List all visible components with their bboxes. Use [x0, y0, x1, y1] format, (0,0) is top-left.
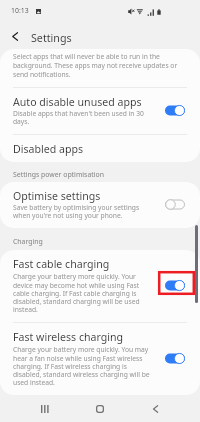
staticText: Save battery by optimising your settings… [13, 203, 150, 220]
button[interactable]: Fast cable charging [0, 250, 200, 322]
staticText: Settings power optimisation [13, 170, 104, 179]
button[interactable]: Back [7, 28, 23, 44]
staticText: Charge your battery more quickly. You ma… [13, 345, 150, 387]
staticText: Disabled apps [13, 142, 84, 156]
staticText: Charging [13, 237, 43, 246]
button[interactable]: Back [143, 396, 168, 421]
staticText: Select apps that will never be able to r… [13, 52, 189, 79]
staticText: Fast wireless charging [13, 330, 124, 344]
button[interactable]: Disabled apps [0, 134, 200, 162]
staticText: Settings [31, 31, 72, 46]
staticText: Auto disable unused apps [13, 95, 142, 109]
button[interactable]: Recent apps [32, 396, 57, 421]
button[interactable]: Home [87, 396, 112, 421]
staticText: Disable apps that haven't been used in 3… [13, 109, 150, 126]
button[interactable]: Optimise settings [0, 182, 200, 228]
staticText: Charge your battery more quickly. Your d… [13, 272, 150, 314]
staticText: 10:13 [11, 6, 29, 15]
staticText: Optimise settings [13, 189, 101, 203]
button[interactable]: Fast wireless charging [0, 323, 200, 395]
staticText: Fast cable charging [13, 257, 110, 271]
button[interactable]: Auto disable unused apps [0, 88, 200, 134]
